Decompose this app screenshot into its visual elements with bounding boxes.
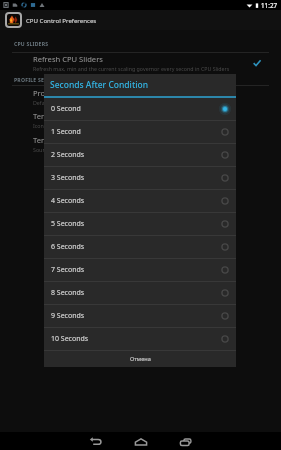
staticText: Refresh CPU Sliders	[33, 54, 103, 64]
staticText: 6 Seconds	[51, 242, 218, 252]
button[interactable]: 3 Seconds	[44, 167, 236, 189]
staticText: 9 Seconds	[51, 311, 218, 321]
staticText: 3 Seconds	[51, 173, 218, 183]
staticText: PROFILE SETTINGS	[14, 77, 64, 84]
button[interactable]: Profile	[0, 86, 281, 108]
staticText: Temperature	[33, 135, 79, 145]
staticText: Icon	[33, 122, 44, 129]
button[interactable]: Recent apps	[163, 432, 208, 450]
staticText: Отмена	[130, 355, 151, 363]
button[interactable]: 2 Seconds	[44, 144, 236, 166]
button[interactable]: Back	[73, 432, 118, 450]
staticText: Default	[33, 99, 52, 106]
staticText: Refresh max, min and the current scaling…	[33, 65, 230, 72]
staticText: 11:27	[261, 1, 278, 10]
button[interactable]: 5 Seconds	[44, 213, 236, 235]
button[interactable]: Temperature	[0, 133, 281, 155]
button[interactable]: 1 Second	[44, 121, 236, 143]
staticText: Sound	[33, 146, 49, 153]
staticText: Profile	[33, 88, 56, 98]
button[interactable]: 10 Seconds	[44, 328, 236, 350]
staticText: 2 Seconds	[51, 150, 218, 160]
staticText: 1 Second	[51, 127, 218, 137]
staticText: 8 Seconds	[51, 288, 218, 298]
button[interactable]: App icon	[7, 14, 20, 26]
staticText: Seconds After Condition	[50, 79, 148, 91]
staticText: Temperature	[33, 111, 79, 121]
button[interactable]: 8 Seconds	[44, 282, 236, 304]
button[interactable]: Temperature	[0, 109, 281, 131]
button[interactable]: Refresh CPU Sliders	[0, 52, 281, 74]
button[interactable]: 7 Seconds	[44, 259, 236, 281]
staticText: 4 Seconds	[51, 196, 218, 206]
staticText: CPU Control Preferences	[26, 16, 97, 24]
staticText: CPU SLIDERS	[14, 41, 49, 48]
staticText: 0 Second	[51, 104, 218, 114]
button[interactable]: 9 Seconds	[44, 305, 236, 327]
button[interactable]: Home	[118, 432, 163, 450]
staticText: 10 Seconds	[51, 334, 218, 344]
button[interactable]: Отмена	[44, 351, 236, 367]
staticText: 7 Seconds	[51, 265, 218, 275]
button[interactable]: 0 Second	[44, 98, 236, 120]
staticText: 5 Seconds	[51, 219, 218, 229]
button[interactable]: 6 Seconds	[44, 236, 236, 258]
button[interactable]: 4 Seconds	[44, 190, 236, 212]
